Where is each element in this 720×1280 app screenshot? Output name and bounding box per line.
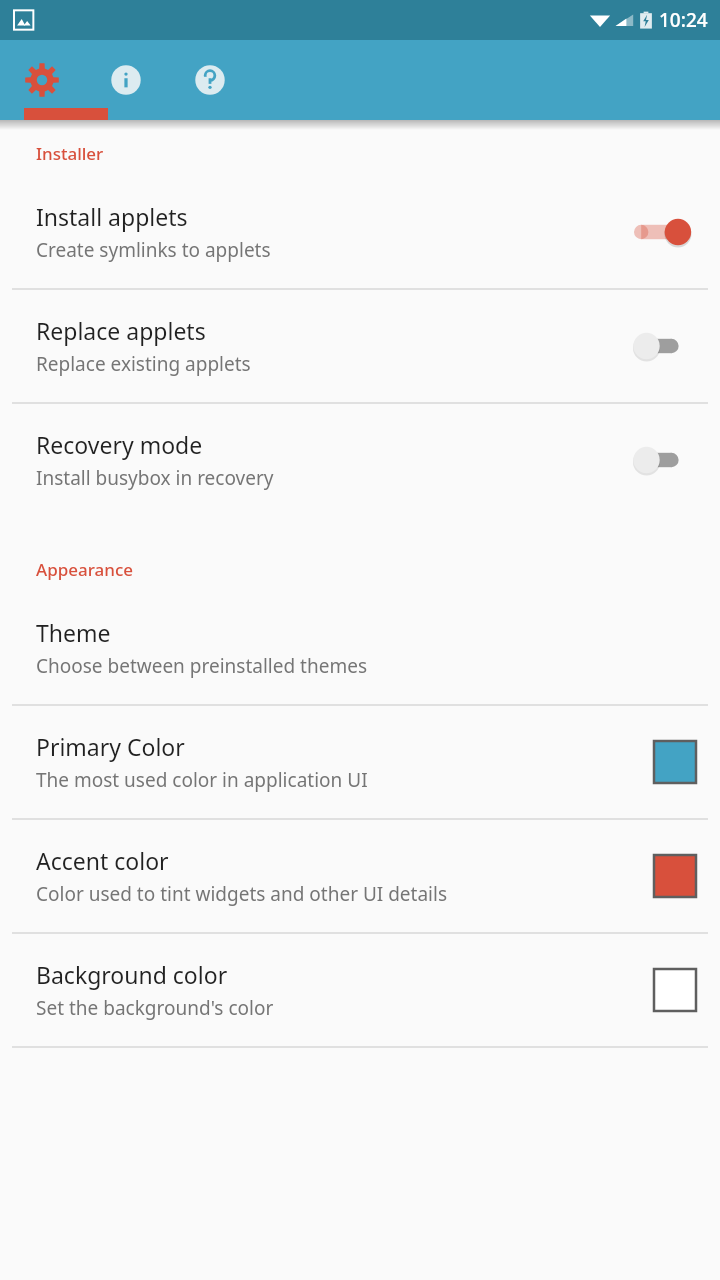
button[interactable]: Replace applets: [0, 290, 720, 402]
button[interactable]: Theme: [0, 592, 720, 704]
staticText: Appearance: [36, 558, 134, 581]
staticText: Install applets: [36, 201, 188, 232]
staticText: 10:24: [659, 7, 708, 33]
button[interactable]: Toggle on: [634, 212, 696, 252]
staticText: Theme: [36, 617, 111, 648]
staticText: Background color: [36, 959, 228, 990]
staticText: Install busybox in recovery: [36, 465, 274, 491]
button[interactable]: Toggle off: [634, 440, 696, 480]
button[interactable]: Pick color: [654, 969, 696, 1011]
button[interactable]: Accent color: [0, 820, 720, 932]
button[interactable]: Pick color: [654, 741, 696, 783]
staticText: Create symlinks to applets: [36, 237, 271, 263]
staticText: Set the background's color: [36, 995, 274, 1021]
staticText: The most used color in application UI: [36, 767, 368, 793]
staticText: Color used to tint widgets and other UI …: [36, 881, 448, 907]
button[interactable]: Install applets: [0, 176, 720, 288]
button[interactable]: Primary Color: [0, 706, 720, 818]
staticText: Choose between preinstalled themes: [36, 653, 367, 679]
staticText: Installer: [36, 142, 104, 165]
staticText: Replace applets: [36, 315, 206, 346]
staticText: Recovery mode: [36, 429, 203, 460]
button[interactable]: Background color: [0, 934, 720, 1046]
button[interactable]: Recovery mode: [0, 404, 720, 516]
button[interactable]: Toggle off: [634, 326, 696, 366]
staticText: Accent color: [36, 845, 169, 876]
button[interactable]: Help: [168, 40, 252, 120]
button[interactable]: Info: [84, 40, 168, 120]
staticText: Replace existing applets: [36, 351, 251, 377]
staticText: Primary Color: [36, 731, 185, 762]
button[interactable]: Settings: [0, 40, 84, 120]
button[interactable]: Pick color: [654, 855, 696, 897]
